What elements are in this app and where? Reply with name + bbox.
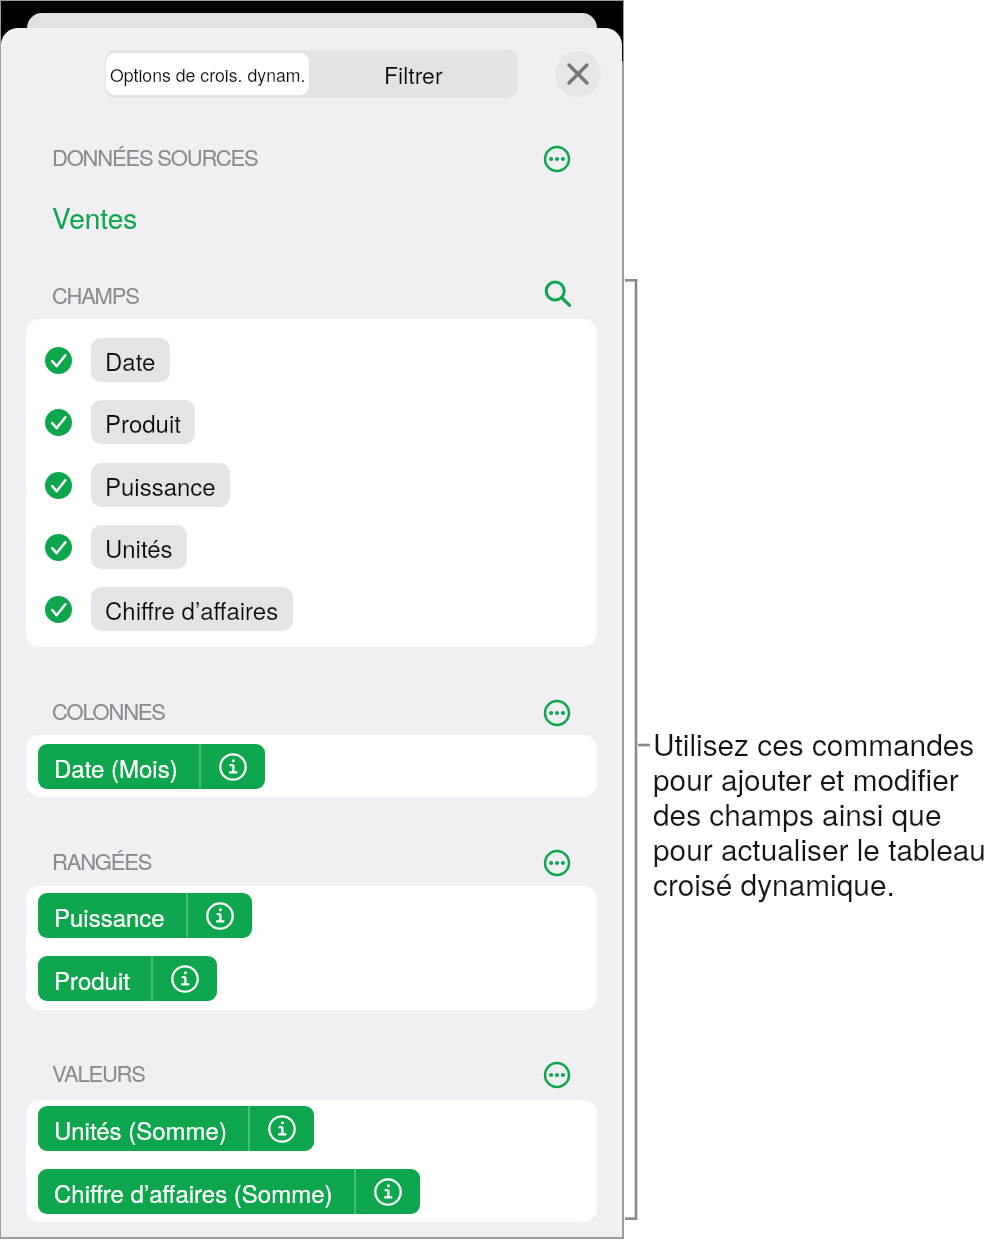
button[interactable]: More options for rows (535, 841, 579, 885)
staticText: Unités (105, 530, 173, 564)
button[interactable]: Options de crois. dynam. (106, 53, 309, 95)
button[interactable]: Produit (45, 397, 195, 447)
button[interactable]: Unités (Somme) (38, 1106, 314, 1151)
staticText: Date (105, 343, 156, 377)
button[interactable]: Search (535, 272, 579, 316)
staticText: CHAMPS (52, 279, 139, 311)
button[interactable]: More options for source data (535, 137, 579, 181)
button[interactable]: Puissance (45, 460, 230, 510)
staticText: DONNÉES SOURCES (52, 141, 258, 173)
staticText: Chiffre d’affaires (105, 592, 279, 626)
staticText: Date (Mois) (54, 750, 178, 784)
staticText: Utilisez ces commandes pour ajouter et m… (653, 722, 995, 905)
staticText: COLONNES (52, 695, 165, 727)
button[interactable]: Puissance (38, 893, 252, 938)
button[interactable]: Filtrer (309, 50, 518, 98)
staticText: Puissance (105, 468, 216, 502)
button[interactable]: Unités (45, 522, 187, 572)
staticText: Ventes (52, 197, 138, 237)
button[interactable]: More options for columns (535, 691, 579, 735)
button[interactable]: Date (45, 335, 170, 385)
button[interactable]: Ventes (52, 197, 138, 237)
staticText: RANGÉES (52, 845, 152, 877)
staticText: Puissance (54, 899, 165, 933)
staticText: Produit (105, 405, 181, 439)
button[interactable]: Chiffre d’affaires (45, 584, 293, 634)
staticText: Produit (54, 962, 130, 996)
staticText: Options de crois. dynam. (110, 62, 306, 87)
button[interactable]: Close (555, 51, 601, 97)
button[interactable]: Chiffre d’affaires (Somme) (38, 1169, 420, 1214)
button[interactable]: Produit (38, 956, 217, 1001)
staticText: Filtrer (384, 58, 443, 91)
staticText: VALEURS (52, 1057, 145, 1089)
staticText: Chiffre d’affaires (Somme) (54, 1175, 333, 1209)
button[interactable]: Date (Mois) (38, 744, 265, 789)
staticText: Unités (Somme) (54, 1112, 227, 1146)
button[interactable]: More options for values (535, 1053, 579, 1097)
